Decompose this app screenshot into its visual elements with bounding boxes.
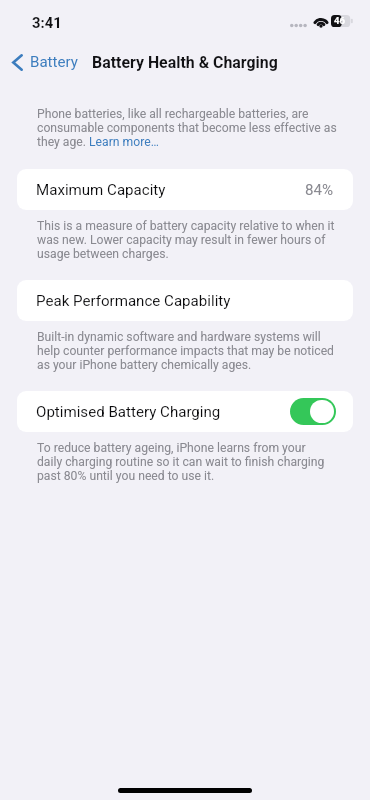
button[interactable]: Peak Performance Capability [17, 280, 353, 321]
staticText: Optimised Battery Charging [36, 403, 221, 421]
staticText: Battery Health & Charging [92, 53, 278, 72]
staticText: Built-in dynamic software and hardware s… [37, 330, 334, 372]
staticText: Battery [30, 53, 78, 71]
staticText: 84% [305, 181, 334, 199]
staticText: Maximum Capacity [36, 181, 166, 199]
staticText: 3:41 [32, 14, 62, 31]
button[interactable]: Battery [0, 48, 86, 76]
button[interactable]: Maximum Capacity [17, 169, 353, 210]
staticText: This is a measure of battery capacity re… [37, 219, 335, 261]
staticText: Peak Performance Capability [36, 292, 231, 310]
staticText: Phone batteries, like all rechargeable b… [37, 107, 337, 149]
staticText: To reduce battery ageing, iPhone learns … [37, 441, 325, 483]
button[interactable]: Optimised Battery Charging toggle [290, 398, 336, 425]
staticText: 46 [334, 15, 346, 26]
